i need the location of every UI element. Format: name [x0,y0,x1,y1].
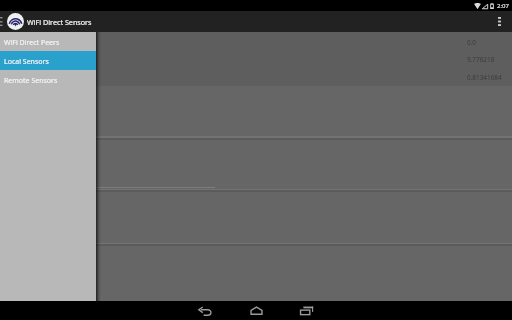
staticText: WiFi Direct Peers [4,38,60,48]
button[interactable]: Home [233,301,279,320]
staticText: 0.0 [467,38,477,47]
button[interactable]: More options [490,11,512,32]
staticText: Remote Sensors [4,76,58,86]
staticText: 9.776218 [467,55,495,64]
button[interactable]: Open navigation drawer [0,11,6,32]
staticText: 0.81341684 [467,73,502,82]
button[interactable]: Recent apps [284,301,330,320]
staticText: 2:07 [497,2,509,10]
button[interactable]: Remote Sensors [0,70,96,89]
button[interactable]: Local Sensors [0,51,96,70]
button[interactable]: WiFi Direct Peers [0,32,96,51]
staticText: WiFi Direct Sensors [27,17,92,27]
button[interactable]: Back [182,301,228,320]
staticText: Local Sensors [4,57,49,67]
